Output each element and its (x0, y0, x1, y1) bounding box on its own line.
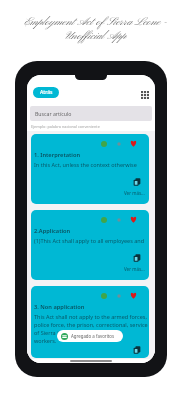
staticText: 2.Application (34, 227, 71, 235)
staticText: (1)This Act shall apply to all employees… (34, 237, 149, 244)
button[interactable]: Copy article (131, 176, 143, 188)
staticText: In this Act, unless the context otherwis… (34, 161, 149, 168)
staticText: 1. Interpretation (34, 151, 81, 159)
button[interactable]: Add to favorites (128, 214, 139, 225)
staticText: Ejemplo: palabra nacional conveniente (31, 124, 100, 129)
button[interactable]: Buscar artículo (30, 106, 152, 121)
staticText: Buscar artículo (35, 110, 72, 117)
button[interactable]: Atrás (33, 87, 59, 98)
button[interactable]: Copy article (131, 344, 143, 356)
staticText: Employment Act of Sierra Leone - (24, 15, 167, 29)
button[interactable]: Mark as read (31, 210, 149, 280)
staticText: Atrás (40, 89, 53, 96)
button[interactable]: Mark as read (31, 134, 149, 204)
button[interactable]: Mark as read (98, 138, 109, 149)
staticText: Unofficial App (65, 29, 126, 43)
button[interactable]: Add to favorites (128, 138, 139, 149)
button[interactable]: Share (113, 290, 124, 301)
button[interactable]: Mark as read (31, 286, 149, 358)
button[interactable]: Ver más... (124, 190, 145, 196)
staticText: Agregado a favoritos (71, 333, 115, 339)
button[interactable]: Mark as read (98, 290, 109, 301)
button[interactable]: Share (113, 138, 124, 149)
button[interactable]: Agregado a favoritos (57, 330, 123, 342)
staticText: 3. Non application (34, 303, 85, 311)
button[interactable]: Ver más... (124, 266, 145, 272)
button[interactable]: Mark as read (98, 214, 109, 225)
staticText: This Act shall not apply to the armed fo… (34, 313, 149, 345)
button[interactable]: Share (113, 214, 124, 225)
button[interactable]: Copy article (131, 252, 143, 264)
button[interactable]: Add to favorites (128, 290, 139, 301)
button[interactable]: Grid view (139, 89, 150, 100)
